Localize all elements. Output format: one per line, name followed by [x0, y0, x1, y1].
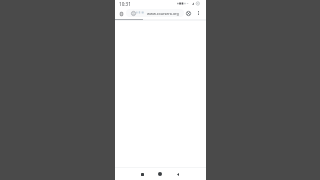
button[interactable]: Recent apps — [137, 167, 147, 180]
button[interactable]: Home — [155, 167, 165, 180]
staticText: www.coursera.org — [147, 11, 179, 16]
staticText: 10:31 — [119, 1, 131, 7]
button[interactable]: Search or type URL — [126, 9, 184, 17]
button[interactable]: Back — [173, 167, 183, 180]
button[interactable]: Site information — [129, 9, 137, 17]
button[interactable]: Tabs — [117, 10, 125, 18]
button[interactable]: Stop loading — [184, 9, 192, 17]
button[interactable]: More options — [194, 9, 202, 17]
